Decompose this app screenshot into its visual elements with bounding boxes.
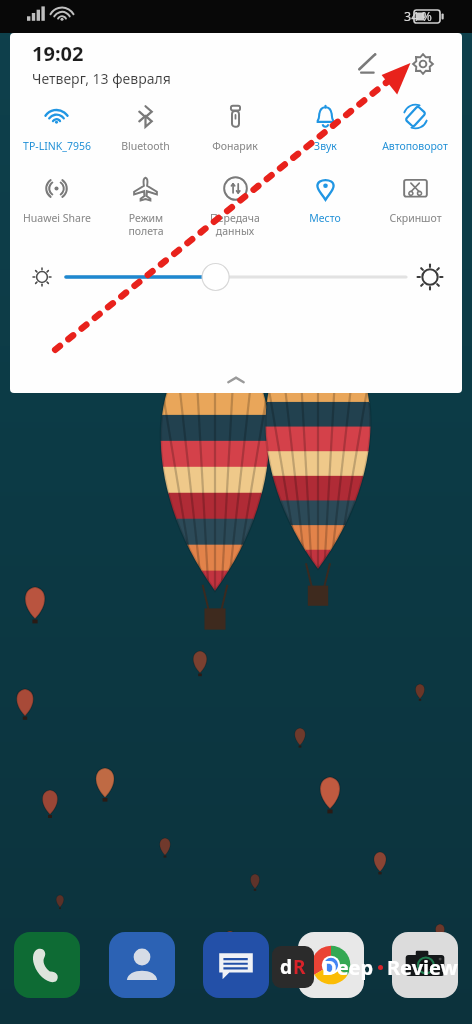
button[interactable]: Contacts — [109, 932, 175, 998]
button[interactable]: Edit tiles — [344, 41, 390, 87]
staticText: Bluetooth — [121, 139, 170, 153]
staticText: 34 % — [404, 8, 432, 25]
button[interactable]: Settings — [400, 41, 446, 87]
button[interactable]: Phone — [14, 932, 80, 998]
button[interactable]: Звук — [280, 99, 370, 157]
button[interactable]: Bluetooth — [101, 99, 190, 157]
staticText: Четверг, 13 февраля — [32, 69, 171, 88]
staticText: R — [293, 954, 306, 980]
staticText: 19:02 — [32, 40, 84, 67]
button[interactable] — [62, 257, 410, 297]
staticText: d — [280, 954, 293, 980]
button[interactable]: TP-LINK_7956 — [12, 99, 101, 157]
staticText: Автоповорот — [382, 139, 448, 153]
staticText: Фонарик — [212, 139, 258, 153]
button[interactable]: Camera — [392, 932, 458, 998]
staticText: Режим полета — [128, 211, 164, 238]
button[interactable]: Huawei Share — [12, 171, 101, 229]
staticText: Review — [387, 954, 458, 981]
staticText: Huawei Share — [23, 211, 91, 225]
button[interactable]: Передача данных — [190, 171, 280, 242]
button[interactable]: Raise brightness — [410, 257, 450, 297]
staticText: TP-LINK_7956 — [23, 139, 91, 153]
button[interactable]: Lower brightness — [22, 257, 62, 297]
staticText: Звук — [314, 139, 337, 153]
button[interactable]: Место — [280, 171, 370, 229]
button[interactable]: Режим полета — [101, 171, 190, 242]
button[interactable]: Messages — [203, 932, 269, 998]
button[interactable]: Скриншот — [370, 171, 460, 229]
button[interactable]: Автоповорот — [370, 99, 460, 157]
staticText: Deep — [322, 954, 374, 981]
staticText: Скриншот — [389, 211, 442, 225]
button[interactable]: Фонарик — [190, 99, 280, 157]
staticText: Место — [309, 211, 341, 225]
button[interactable]: Chrome — [298, 932, 364, 998]
button[interactable]: Collapse panel — [10, 367, 462, 393]
staticText: Передача данных — [210, 211, 260, 238]
